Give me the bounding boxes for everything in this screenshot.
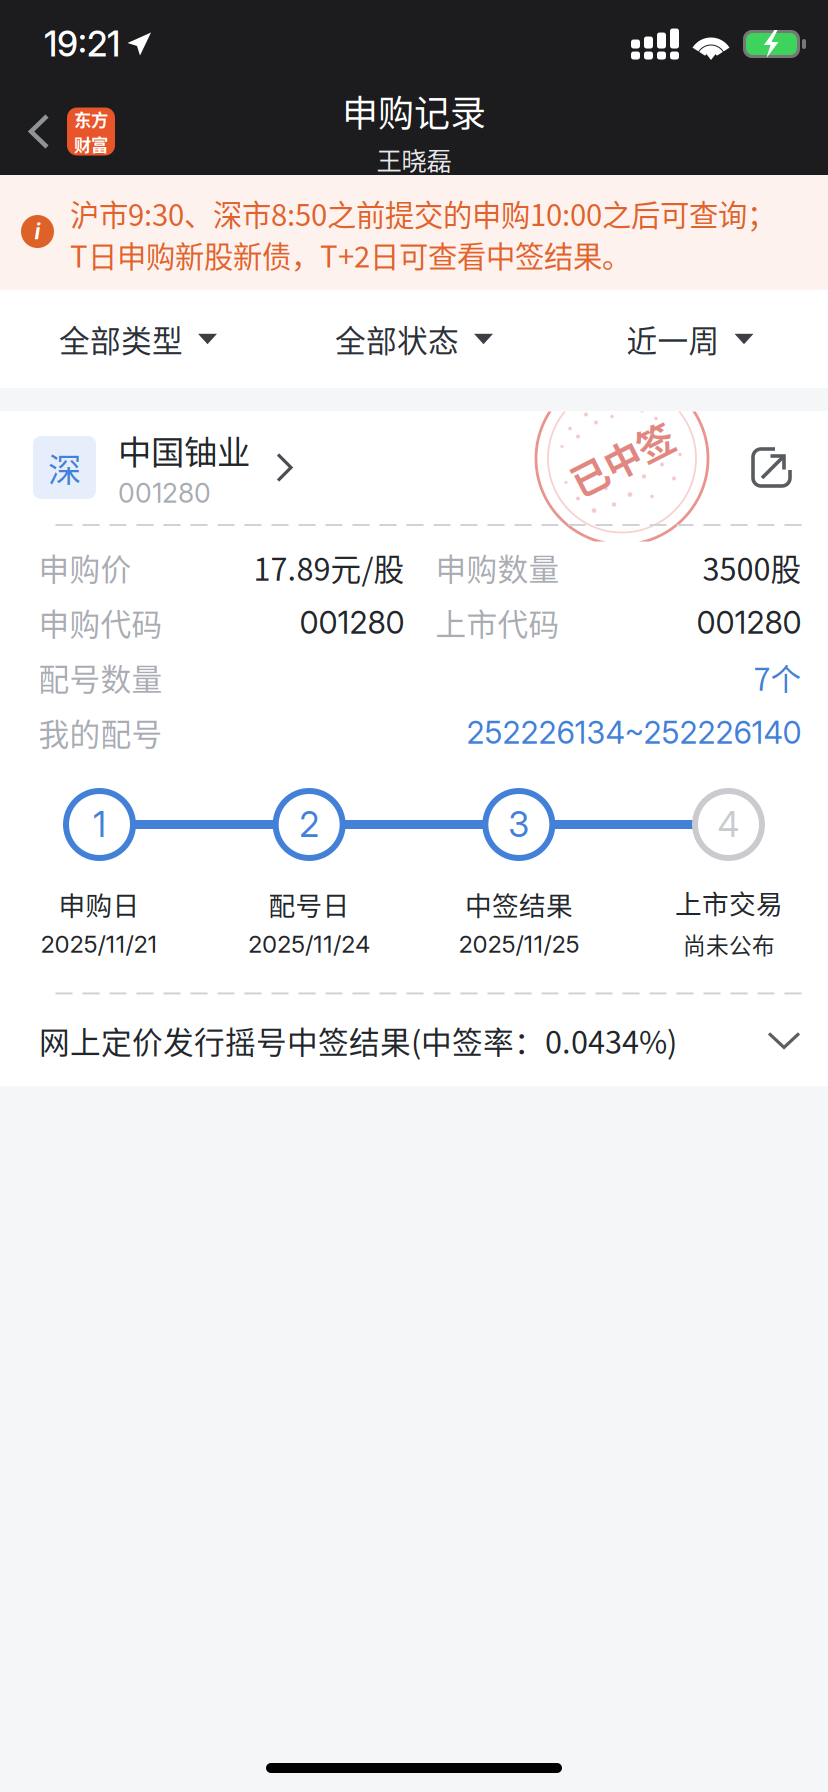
button[interactable]: 全部状态 xyxy=(276,290,552,388)
button[interactable]: Back xyxy=(0,88,129,175)
staticText: 沪市9:30、深市8:50之前提交的申购10:00之后可查询； xyxy=(70,192,776,234)
staticText: 申购价 xyxy=(38,545,131,590)
button[interactable]: Share xyxy=(751,417,828,517)
staticText: 王晓磊 xyxy=(376,141,451,178)
staticText: 东方 xyxy=(74,106,108,131)
staticText: 上市代码 xyxy=(435,600,559,645)
staticText: 4 xyxy=(717,803,739,845)
staticText: 001280 xyxy=(299,604,404,641)
staticText: 17.89元/股 xyxy=(253,545,404,590)
staticText: 我的配号 xyxy=(38,710,162,755)
staticText: 配号数量 xyxy=(38,655,162,700)
staticText: T日申购新股新债，T+2日可查看中签结果。 xyxy=(70,233,631,276)
staticText: 2025/11/25 xyxy=(458,929,579,958)
staticText: 近一周 xyxy=(626,317,719,361)
button[interactable]: 网上定价发行摇号中签结果(中签率：0.0434%) xyxy=(6,994,828,1086)
staticText: 配号日 xyxy=(268,885,349,923)
button[interactable]: 近一周 xyxy=(552,290,828,388)
staticText: 全部类型 xyxy=(59,317,183,361)
staticText: 申购数量 xyxy=(435,545,559,590)
staticText: i xyxy=(34,219,40,244)
button[interactable]: 深 xyxy=(6,417,293,517)
staticText: 中国铀业 xyxy=(118,426,250,474)
staticText: 2 xyxy=(299,803,319,845)
button[interactable]: 全部类型 xyxy=(0,290,276,388)
staticText: 001280 xyxy=(118,477,211,509)
staticText: 上市交易 xyxy=(675,883,783,922)
staticText: 申购记录 xyxy=(342,85,486,137)
staticText: 1 xyxy=(93,803,106,845)
staticText: 2025/11/24 xyxy=(248,929,370,958)
staticText: 网上定价发行摇号中签结果(中签率：0.0434%) xyxy=(39,1018,677,1063)
staticText: 252226134~252226140 xyxy=(466,714,801,751)
staticText: 001280 xyxy=(696,604,801,641)
staticText: 19:21 xyxy=(44,23,120,65)
staticText: 2025/11/21 xyxy=(40,929,157,958)
staticText: 已中签 xyxy=(566,431,677,486)
staticText: 3 xyxy=(508,803,529,845)
staticText: 7个 xyxy=(753,655,801,700)
staticText: 申购代码 xyxy=(38,600,162,645)
staticText: 财富 xyxy=(74,131,108,157)
staticText: 全部状态 xyxy=(335,317,459,361)
staticText: 申购日 xyxy=(58,885,139,923)
staticText: 深 xyxy=(48,443,81,492)
staticText: 尚未公布 xyxy=(683,928,775,960)
staticText: 3500股 xyxy=(702,545,801,590)
staticText: 中签结果 xyxy=(465,885,573,923)
